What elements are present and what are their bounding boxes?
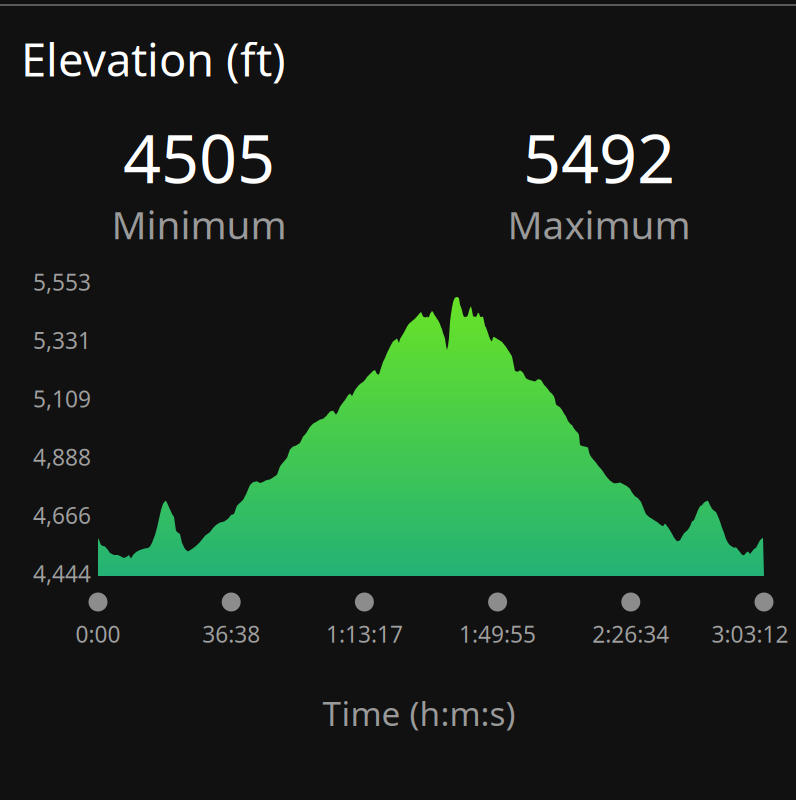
- staticText: 4,444: [33, 558, 91, 588]
- staticText: 1:13:17: [326, 619, 403, 649]
- staticText: Maximum: [507, 199, 690, 250]
- staticText: 0:00: [75, 619, 120, 649]
- staticText: 5,109: [33, 383, 91, 414]
- staticText: 3:03:12: [711, 619, 788, 649]
- staticText: 4505: [123, 113, 275, 202]
- button[interactable]: Elevation chart: [98, 280, 764, 576]
- staticText: 36:38: [202, 619, 260, 649]
- staticText: Elevation (ft): [21, 29, 286, 89]
- staticText: 4,666: [33, 500, 91, 530]
- staticText: 5492: [523, 113, 675, 202]
- staticText: 5,553: [33, 267, 91, 297]
- staticText: 2:26:34: [592, 619, 669, 649]
- staticText: Minimum: [111, 199, 286, 250]
- staticText: 5,331: [33, 325, 91, 355]
- staticText: 1:49:55: [459, 619, 536, 649]
- staticText: 4,888: [33, 442, 91, 472]
- staticText: Time (h:m:s): [322, 691, 515, 735]
